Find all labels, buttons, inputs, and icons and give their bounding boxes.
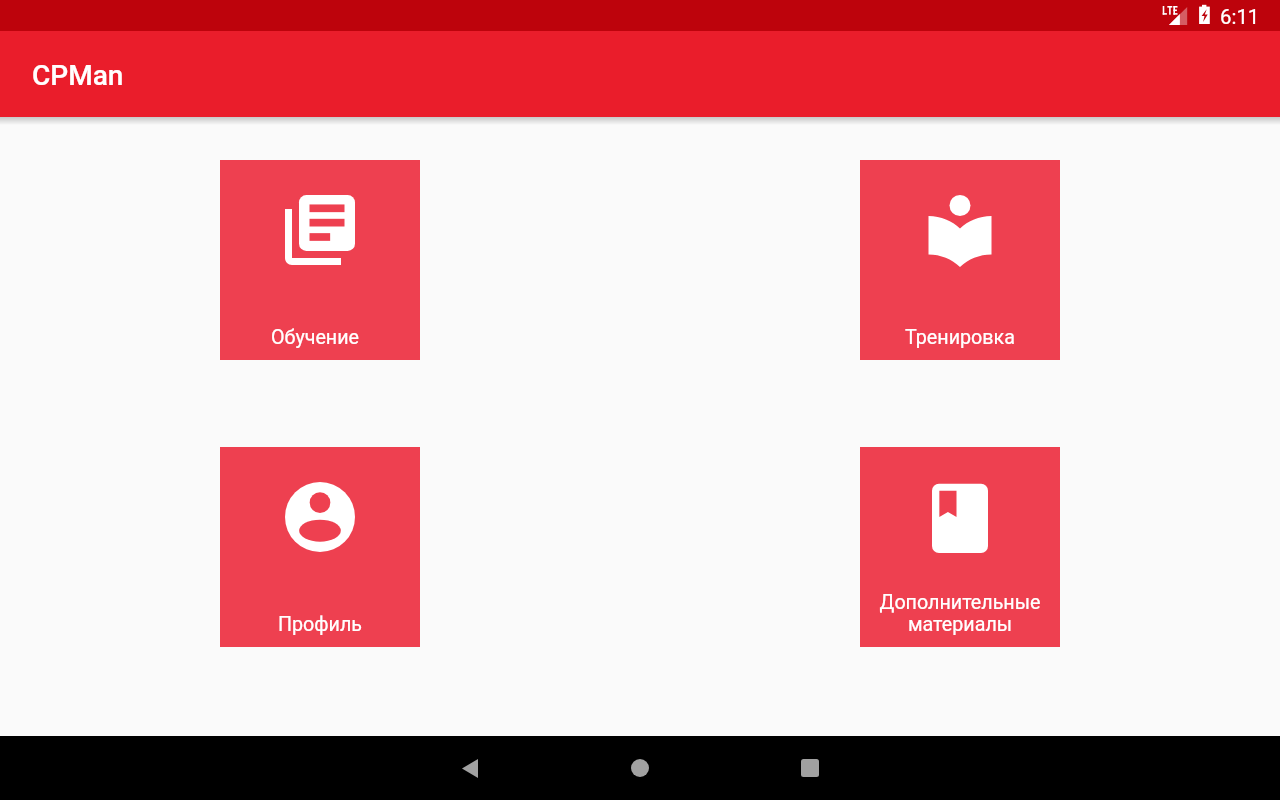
button[interactable]: Профиль <box>220 447 420 647</box>
button[interactable]: Дополнительные материалы <box>860 447 1060 647</box>
staticText: CPMan <box>32 59 124 92</box>
button[interactable]: Recent apps <box>778 736 842 800</box>
staticText: Профиль <box>220 613 420 636</box>
button[interactable]: Тренировка <box>860 160 1060 360</box>
button[interactable]: Обучение <box>220 160 420 360</box>
staticText: Обучение <box>215 326 415 349</box>
button[interactable]: Home <box>608 736 672 800</box>
staticText: Дополнительные материалы <box>860 591 1060 636</box>
staticText: 6:11 <box>1220 5 1260 29</box>
staticText: Тренировка <box>860 326 1060 349</box>
button[interactable]: Back <box>438 736 502 800</box>
